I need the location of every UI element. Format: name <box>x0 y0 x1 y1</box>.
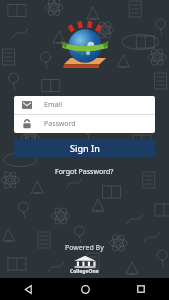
button[interactable]: Sign In <box>14 139 155 157</box>
staticText: CollegeOne <box>70 268 99 275</box>
button[interactable]: Email <box>14 96 155 114</box>
staticText: Sign In <box>70 142 100 154</box>
other: Email <box>22 100 32 110</box>
staticText: Email <box>44 100 62 110</box>
staticText: Password <box>44 119 76 129</box>
button[interactable]: Password <box>14 115 155 133</box>
button[interactable]: Home <box>57 278 113 300</box>
button[interactable]: Back <box>0 278 57 300</box>
staticText: Powered By <box>65 243 104 253</box>
button[interactable]: Recents <box>113 278 169 300</box>
other: Password <box>22 119 32 129</box>
staticText: Forgot Password? <box>55 167 114 177</box>
button[interactable]: Forgot Password? <box>47 165 122 179</box>
